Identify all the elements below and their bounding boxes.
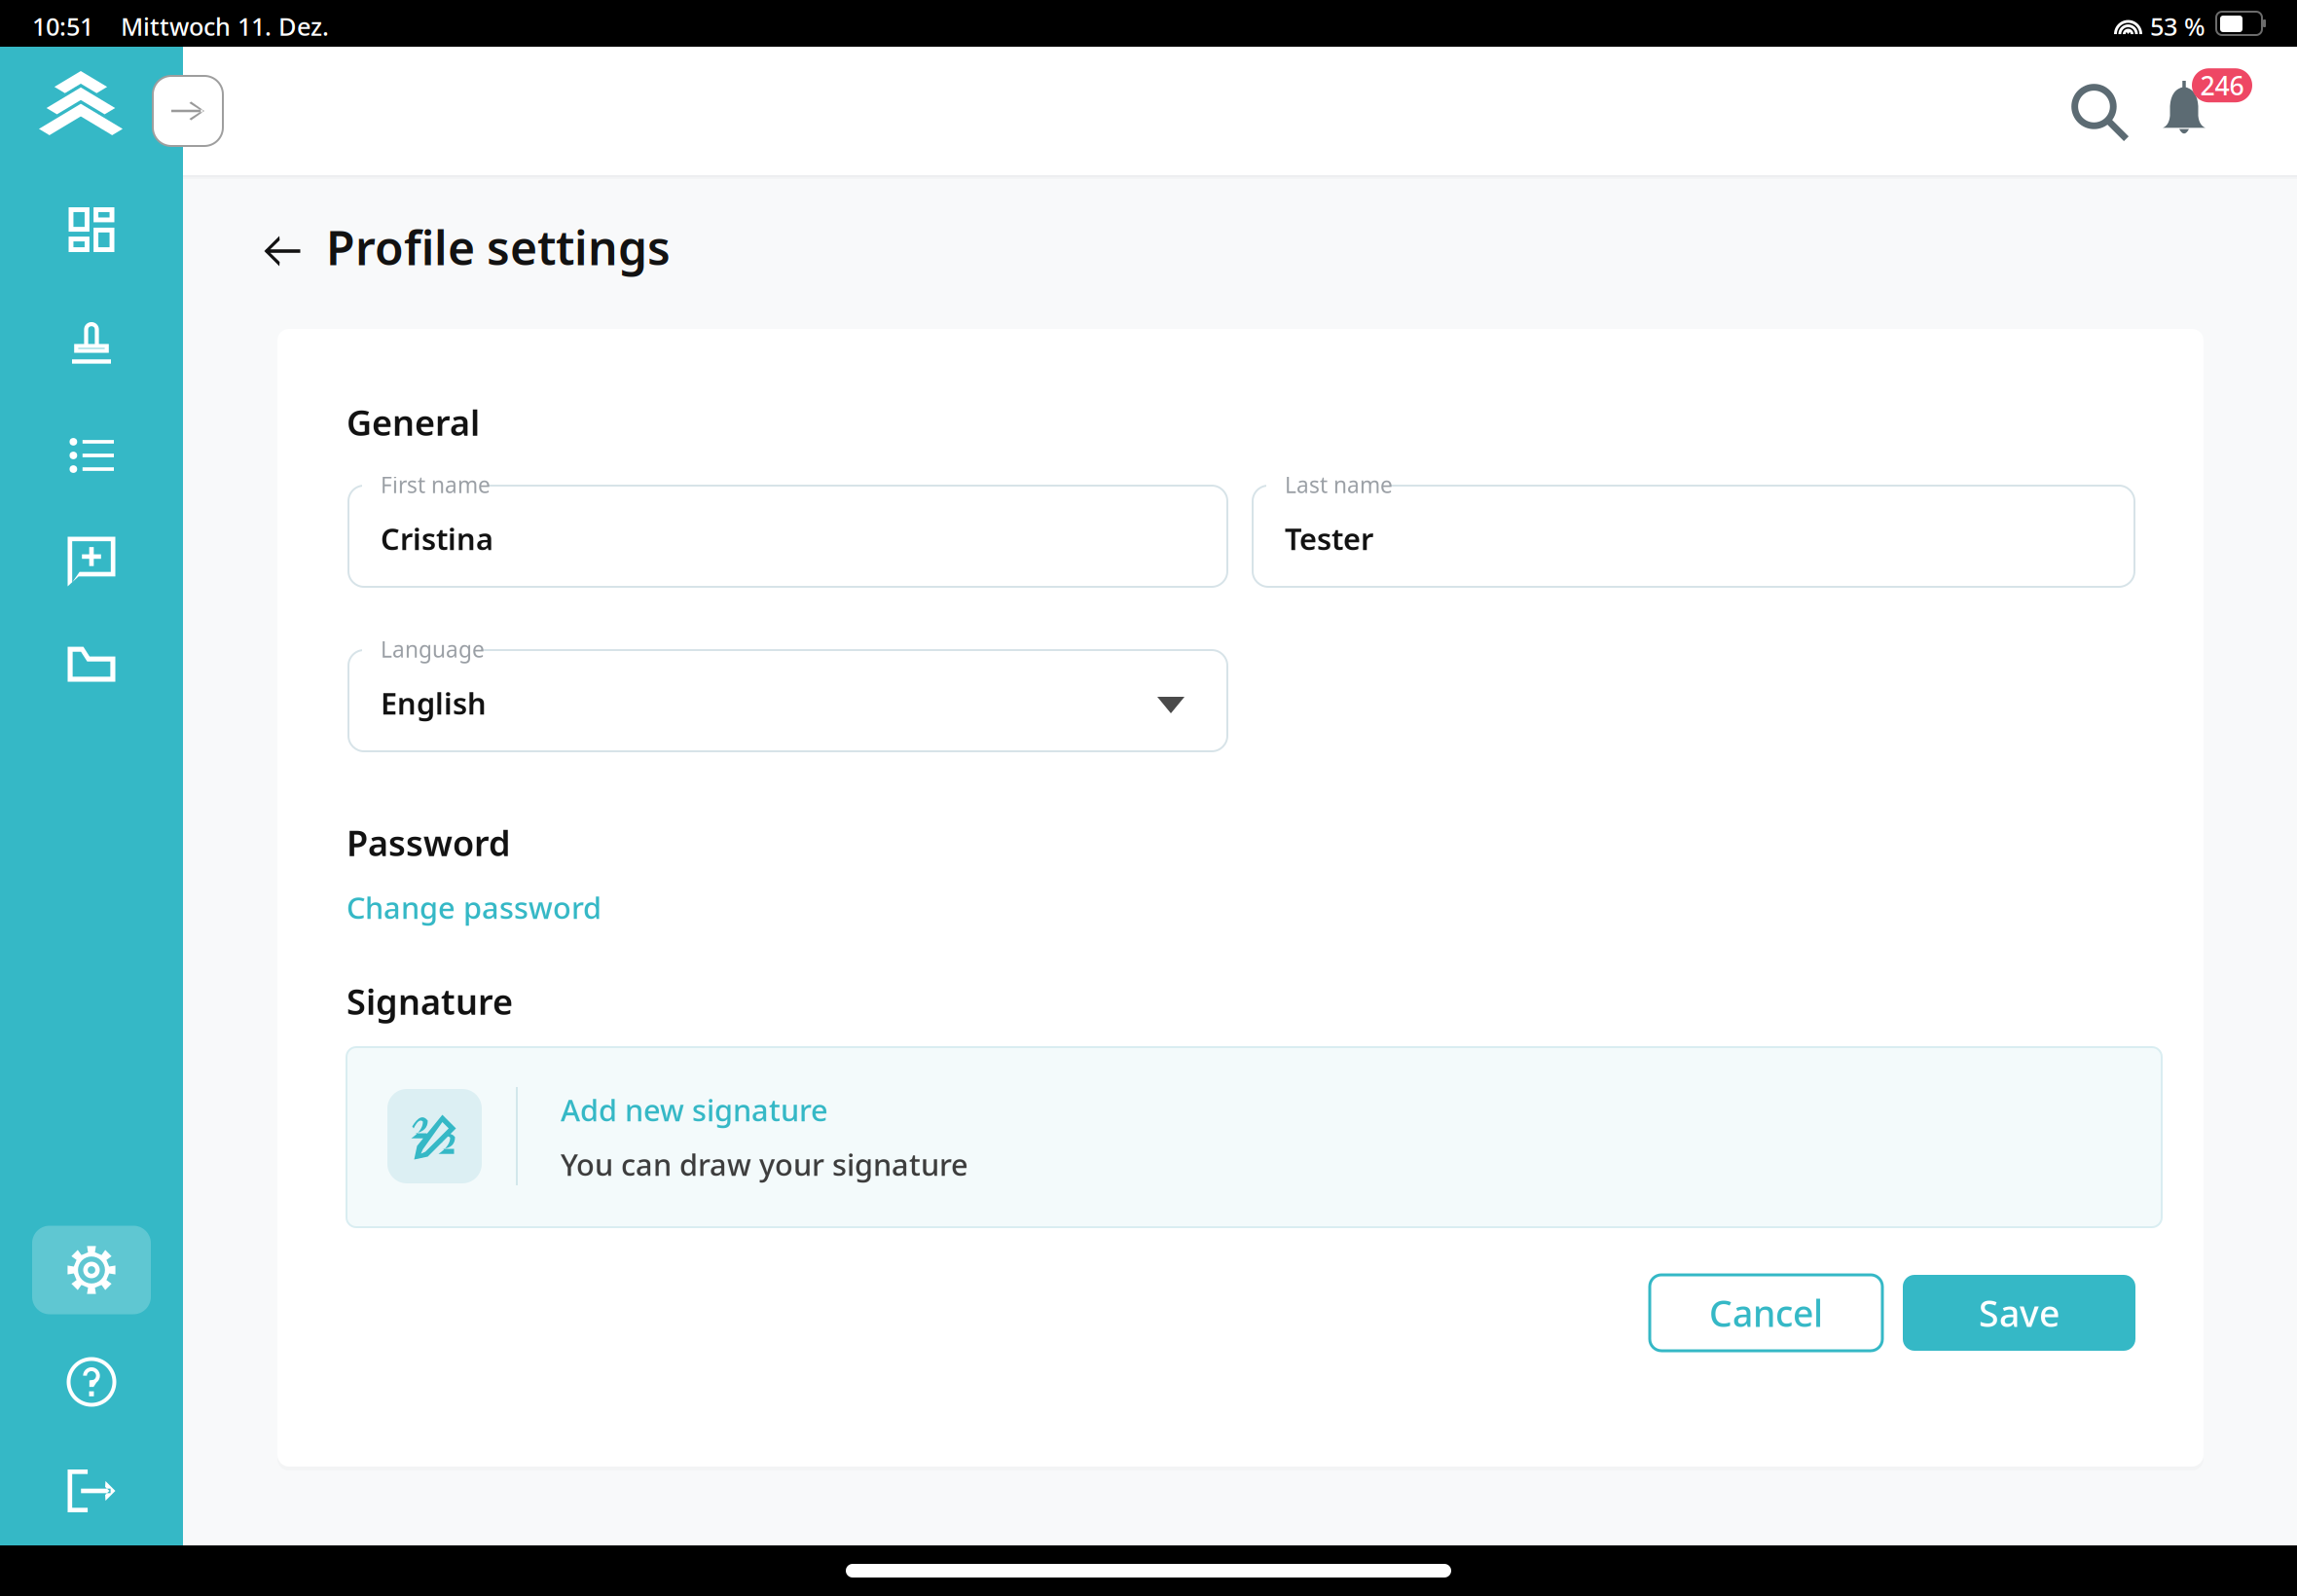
staticText: English <box>381 683 487 723</box>
button[interactable]: Back <box>240 209 324 293</box>
button[interactable]: Log out <box>0 1444 183 1538</box>
staticText: Cancel <box>1709 1289 1823 1337</box>
staticText: Password <box>346 819 511 866</box>
staticText: Save <box>1979 1289 2060 1337</box>
button[interactable]: Search <box>2049 61 2150 163</box>
button[interactable]: Change password <box>346 882 602 933</box>
staticText: 10:51 Mittwoch 11. Dez. <box>32 10 329 42</box>
button[interactable]: Dashboard <box>0 183 183 276</box>
button[interactable]: Cancel <box>1650 1275 1882 1351</box>
button[interactable]: Home <box>39 54 156 152</box>
button[interactable]: Notifications <box>2138 61 2263 163</box>
staticText: Cristina <box>381 519 493 558</box>
button[interactable]: Save <box>1903 1275 2135 1351</box>
staticText: Tester <box>1285 519 1373 558</box>
staticText: Add new signature <box>561 1090 828 1130</box>
staticText: You can draw your signature <box>561 1144 968 1184</box>
button[interactable]: Tasks <box>0 409 183 502</box>
button[interactable]: Stamps <box>0 296 183 389</box>
staticText: 53 % <box>2150 10 2206 42</box>
button[interactable]: Settings <box>0 1223 183 1317</box>
staticText: Language <box>381 635 485 664</box>
button[interactable]: Add new signature <box>346 1047 2162 1227</box>
button[interactable]: Collapse sidebar <box>153 76 223 146</box>
staticText: Profile settings <box>326 216 671 278</box>
staticText: 246 <box>2200 68 2244 103</box>
staticText: Last name <box>1285 470 1393 499</box>
button[interactable]: Files <box>0 617 183 710</box>
staticText: First name <box>381 470 491 499</box>
button[interactable]: Help <box>0 1335 183 1429</box>
staticText: Change password <box>346 888 602 927</box>
button[interactable]: New message <box>0 515 183 608</box>
staticText: General <box>346 399 480 446</box>
staticText: Signature <box>346 978 513 1025</box>
